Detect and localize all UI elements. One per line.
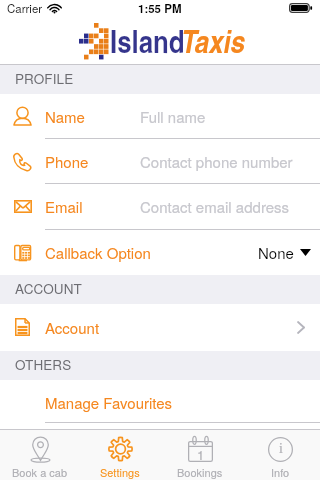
staticText: Full name	[140, 106, 206, 127]
staticText: Carrier	[7, 0, 43, 16]
staticText: Island	[110, 18, 185, 62]
button[interactable]: 1	[160, 430, 240, 480]
staticText: Phone	[45, 151, 89, 172]
button[interactable]: Email	[0, 184, 320, 229]
button[interactable]: i	[240, 430, 320, 480]
staticText: Book a cab	[12, 464, 68, 480]
staticText: Account	[45, 317, 100, 338]
staticText: PROFILE	[15, 69, 74, 88]
button[interactable]: Callback Option	[0, 230, 320, 275]
other: Open account	[297, 321, 305, 334]
button[interactable]: Book a cab	[0, 430, 80, 480]
button[interactable]: Account	[0, 304, 320, 350]
staticText: Taxis	[181, 18, 245, 62]
staticText: Email	[45, 196, 83, 217]
staticText: Manage Favourites	[45, 392, 173, 413]
staticText: Contact email address	[140, 196, 290, 217]
staticText: Settings	[100, 464, 140, 480]
staticText: Bookings	[177, 464, 223, 480]
staticText: i	[279, 441, 283, 457]
button[interactable]: Name	[0, 94, 320, 139]
staticText: Contact phone number	[140, 151, 293, 172]
button[interactable]: Settings	[80, 430, 160, 480]
staticText: 1:55 PM	[138, 0, 182, 16]
button[interactable]: Phone	[0, 139, 320, 184]
staticText: Name	[45, 106, 85, 127]
staticText: Callback Option	[45, 242, 151, 263]
staticText: OTHERS	[15, 355, 72, 374]
staticText: None	[258, 242, 294, 263]
staticText: 1	[197, 445, 205, 464]
staticText: Info	[271, 464, 290, 480]
staticText: ACCOUNT	[15, 279, 82, 298]
button[interactable]: Manage Favourites	[0, 380, 320, 424]
